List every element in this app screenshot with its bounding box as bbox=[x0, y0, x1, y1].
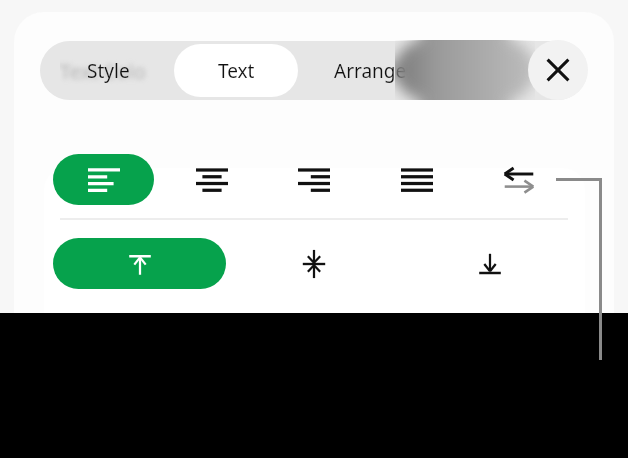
button[interactable]: Text direction bbox=[489, 155, 549, 204]
staticText: Style bbox=[87, 58, 130, 84]
staticText: Text Colo bbox=[60, 58, 146, 85]
button[interactable]: Align left bbox=[53, 154, 154, 205]
button[interactable]: Align center bbox=[182, 155, 242, 204]
button[interactable]: Close bbox=[528, 40, 588, 100]
button[interactable]: Align bottom bbox=[460, 238, 520, 289]
button[interactable]: Text bbox=[174, 44, 298, 97]
button[interactable]: Align top bbox=[53, 238, 226, 289]
button[interactable]: Justify bbox=[387, 155, 447, 204]
button[interactable]: Align right bbox=[284, 155, 344, 204]
button[interactable]: Arrange bbox=[300, 44, 440, 97]
button[interactable]: Style bbox=[43, 44, 173, 97]
staticText: Text bbox=[218, 58, 255, 84]
button[interactable]: Align middle bbox=[284, 238, 344, 289]
staticText: Arrange bbox=[334, 58, 407, 84]
